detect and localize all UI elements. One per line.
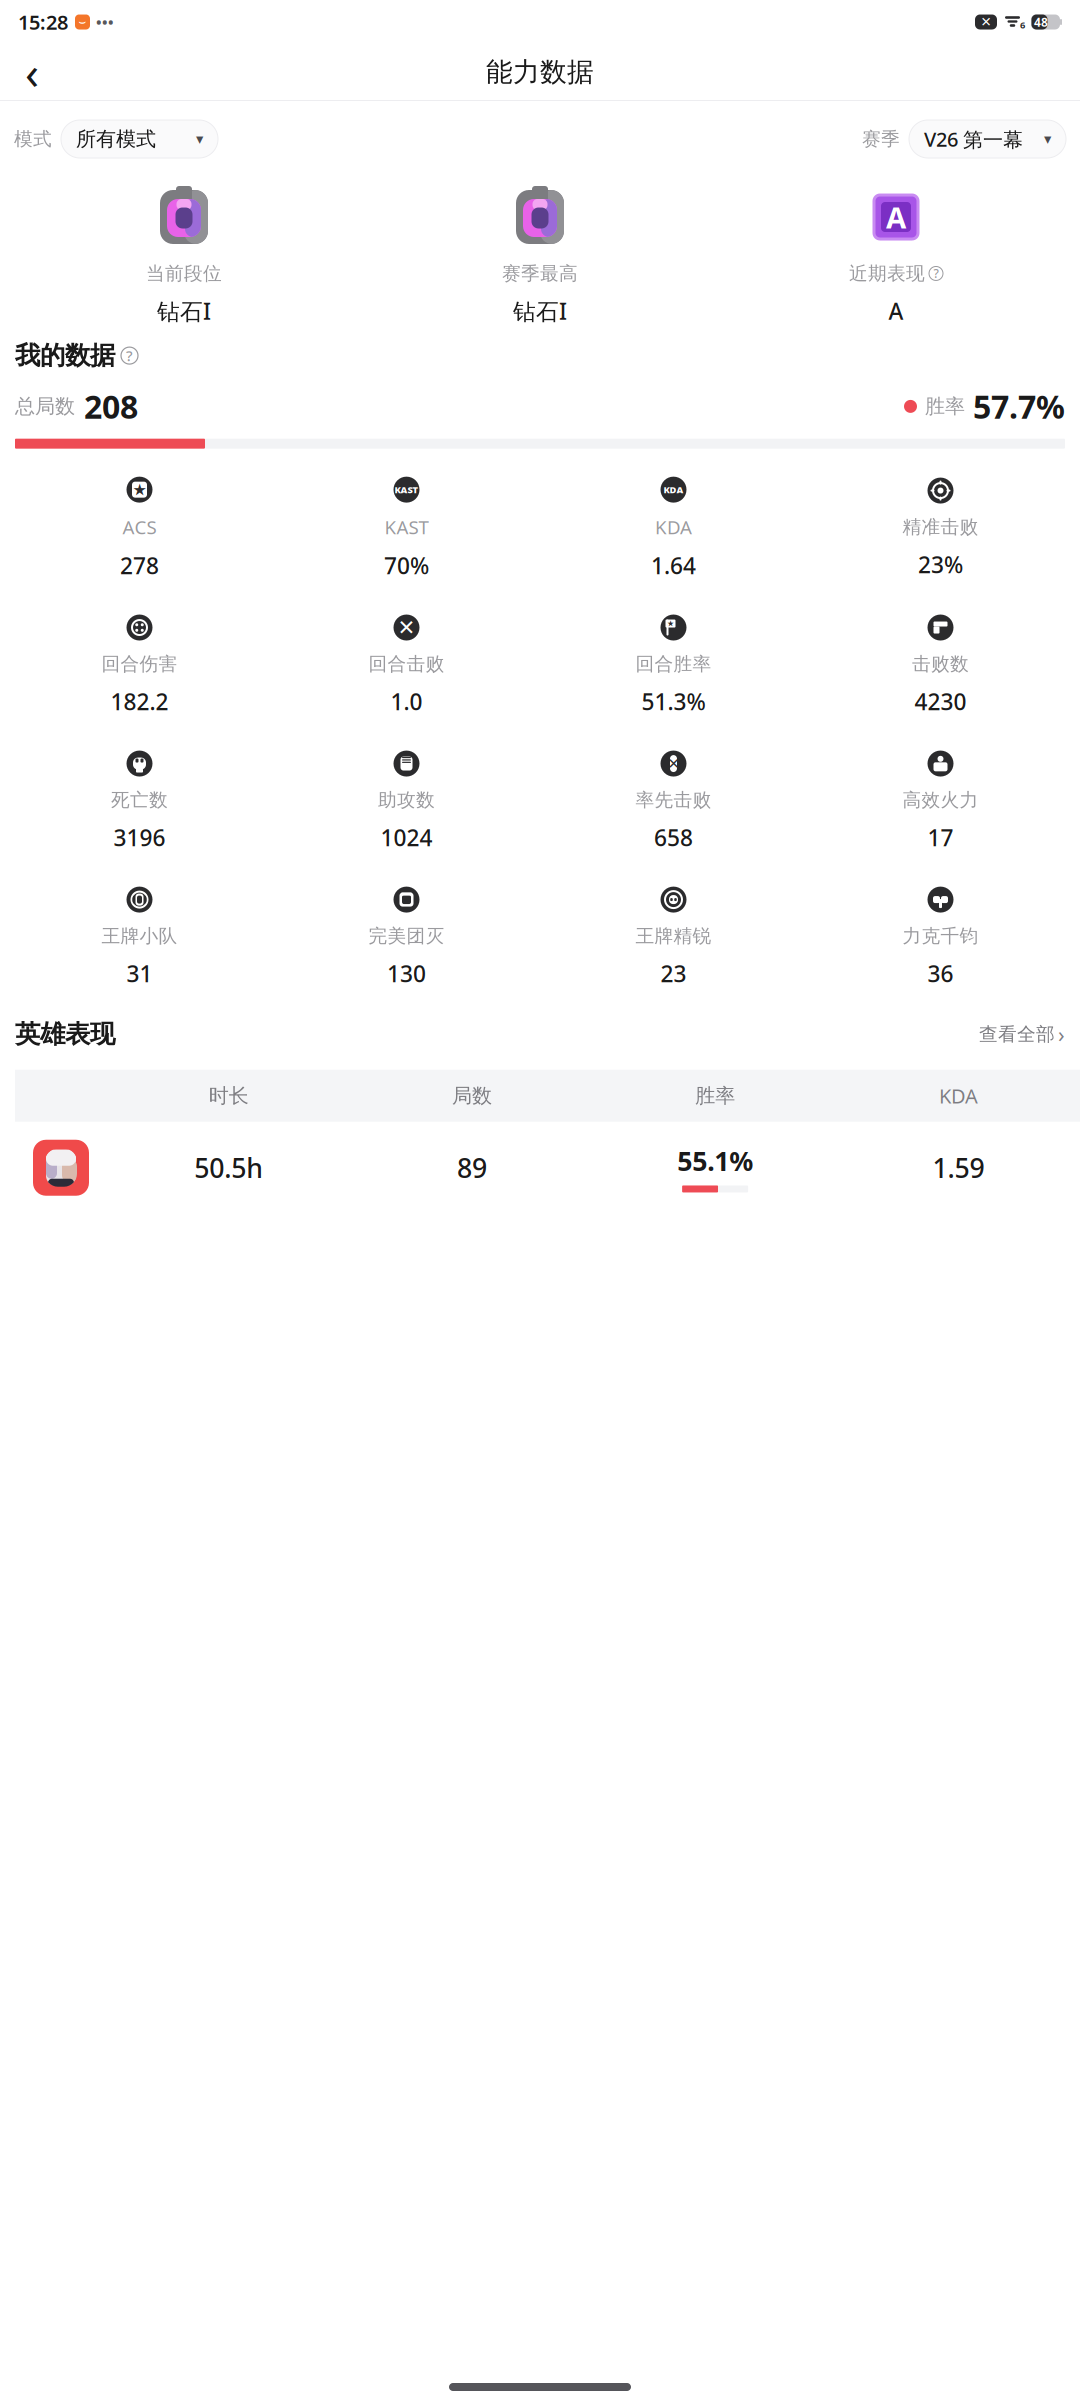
button[interactable]: 王牌精锐	[540, 885, 807, 991]
staticText: 55.1%	[677, 1143, 753, 1178]
button[interactable]: 回合伤害	[6, 612, 273, 718]
staticText: 17	[927, 822, 953, 853]
button[interactable]: 所有模式	[61, 120, 218, 158]
staticText: 回合胜率	[635, 652, 711, 675]
staticText: 208	[84, 385, 138, 428]
staticText: 31	[126, 958, 152, 989]
staticText: 钻石I	[513, 296, 567, 326]
staticText: A	[886, 197, 906, 236]
button[interactable]: 力克千钧	[807, 885, 1074, 991]
staticText: ★	[132, 481, 146, 499]
button[interactable]: KAST	[273, 475, 540, 582]
staticText: 所有模式	[76, 127, 156, 151]
staticText: 英雄表现	[15, 1019, 115, 1050]
staticText: 回合击败	[368, 652, 444, 675]
staticText: 658	[654, 822, 693, 853]
button[interactable]: 精准击败	[807, 476, 1074, 582]
staticText: ▾	[1044, 131, 1051, 147]
staticText: ✕	[397, 615, 415, 640]
staticText: 15:28	[18, 9, 68, 35]
staticText: 率先击败	[635, 789, 711, 811]
staticText: 70%	[384, 550, 429, 580]
staticText: 赛季	[862, 127, 900, 150]
staticText: A	[888, 296, 903, 326]
staticText: 23	[660, 958, 686, 989]
staticText: 高效火力	[902, 789, 978, 811]
staticText: 36	[927, 958, 953, 989]
staticText: 总局数	[15, 394, 75, 419]
button[interactable]: 50.5h	[0, 1122, 1080, 1214]
button[interactable]: 击败数	[807, 612, 1074, 718]
staticText: 1.0	[390, 686, 422, 717]
staticText: 近期表现	[849, 262, 925, 285]
staticText: 50.5h	[194, 1150, 263, 1185]
staticText: 3196	[113, 822, 165, 853]
button[interactable]: 查看全部	[979, 1020, 1065, 1048]
staticText: 89	[457, 1150, 487, 1185]
staticText: 完美团灭	[368, 925, 444, 947]
staticText: ?	[933, 265, 938, 281]
button[interactable]: 助攻数	[273, 749, 540, 855]
staticText: 模式	[14, 127, 52, 150]
staticText: KDA	[663, 483, 683, 496]
staticText: 23%	[918, 549, 963, 580]
staticText: KAST	[384, 515, 428, 539]
button[interactable]: ✕	[540, 749, 807, 855]
button[interactable]: ✕	[273, 612, 540, 718]
staticText: 精准击败	[902, 516, 978, 538]
staticText: 王牌小队	[101, 925, 177, 947]
staticText: 48	[1034, 14, 1048, 30]
staticText: ✕	[980, 14, 991, 29]
staticText: ?	[126, 346, 133, 365]
staticText: 胜率	[695, 1083, 735, 1108]
staticText: 时长	[209, 1083, 249, 1108]
staticText: 钻石I	[157, 296, 211, 326]
staticText: 当前段位	[146, 262, 222, 285]
button[interactable]: 完美团灭	[273, 885, 540, 991]
button[interactable]: 死亡数	[6, 749, 273, 855]
staticText: KDA	[939, 1082, 978, 1109]
staticText: KDA	[655, 515, 692, 539]
button[interactable]: ★	[540, 612, 807, 718]
staticText: V26 第一幕	[924, 126, 1023, 152]
staticText: ✕	[667, 755, 679, 772]
button[interactable]: 高效火力	[807, 749, 1074, 855]
staticText: ›	[1058, 1020, 1065, 1048]
staticText: 130	[387, 958, 426, 989]
button[interactable]: V26 第一幕	[909, 120, 1066, 158]
staticText: 力克千钧	[902, 925, 978, 947]
staticText: 1.64	[651, 550, 696, 580]
staticText: 击败数	[912, 652, 969, 675]
button[interactable]: Back	[8, 48, 56, 96]
staticText: 1024	[380, 822, 432, 853]
staticText: 回合伤害	[101, 652, 177, 675]
staticText: ‹	[25, 42, 39, 102]
button[interactable]: 王牌小队	[6, 885, 273, 991]
staticText: 查看全部	[979, 1023, 1055, 1046]
staticText: 局数	[452, 1083, 492, 1108]
button[interactable]: 关于我的数据	[121, 347, 138, 364]
staticText: 57.7%	[973, 385, 1065, 428]
staticText: 助攻数	[378, 789, 435, 811]
staticText: KAST	[394, 483, 418, 496]
staticText: ▾	[196, 131, 203, 147]
staticText: 王牌精锐	[635, 925, 711, 947]
staticText: ★	[667, 619, 674, 628]
staticText: 我的数据	[15, 340, 115, 371]
staticText: 赛季最高	[502, 262, 578, 285]
staticText: 能力数据	[486, 56, 594, 88]
staticText: 51.3%	[641, 686, 705, 717]
staticText: 6	[1020, 19, 1025, 31]
staticText: 182.2	[110, 686, 168, 717]
staticText: 1.59	[932, 1150, 984, 1185]
staticText: 4230	[914, 686, 966, 717]
staticText: ⌣	[78, 16, 86, 28]
staticText: 278	[120, 550, 159, 580]
staticText: •••	[96, 12, 114, 32]
staticText: 胜率	[925, 394, 965, 419]
button[interactable]: ★	[6, 475, 273, 582]
staticText: ACS	[122, 515, 156, 539]
staticText: 死亡数	[111, 789, 168, 811]
button[interactable]: KDA	[540, 475, 807, 582]
